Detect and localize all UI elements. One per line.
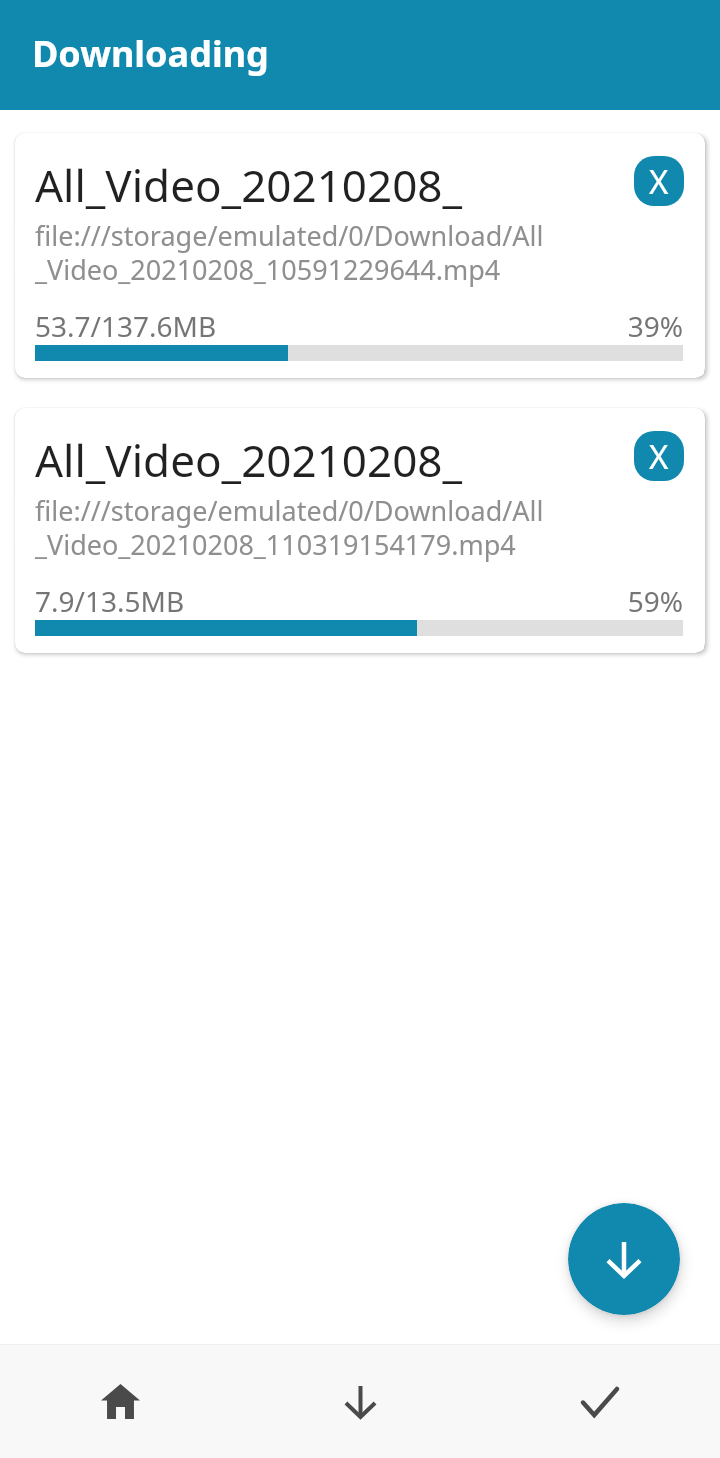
staticText: Downloading — [32, 29, 269, 78]
staticText: 39% — [572, 307, 683, 345]
button[interactable]: All_Video_20210208_ — [15, 133, 705, 378]
button[interactable]: Home — [0, 1345, 240, 1458]
staticText: 59% — [572, 582, 683, 620]
button[interactable]: Start download — [568, 1203, 680, 1315]
staticText: X — [649, 434, 669, 479]
staticText: _Video_20210208_110319154179.mp4 — [35, 526, 516, 563]
staticText: All_Video_20210208_ — [35, 155, 463, 215]
staticText: X — [649, 159, 669, 204]
button[interactable]: All_Video_20210208_ — [15, 408, 705, 653]
staticText: 7.9/13.5MB — [35, 582, 185, 620]
button[interactable]: Downloading — [240, 1345, 480, 1458]
button[interactable]: Cancel download — [634, 156, 684, 206]
staticText: All_Video_20210208_ — [35, 430, 463, 490]
button[interactable]: Cancel download — [634, 431, 684, 481]
button[interactable]: Completed — [480, 1345, 720, 1458]
staticText: file:///storage/emulated/0/Download/All — [35, 217, 544, 254]
staticText: file:///storage/emulated/0/Download/All — [35, 492, 544, 529]
staticText: _Video_20210208_10591229644.mp4 — [35, 251, 501, 288]
staticText: 53.7/137.6MB — [35, 307, 217, 345]
